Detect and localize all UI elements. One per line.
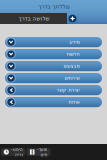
- button[interactable]: מבצעים: [5, 61, 102, 71]
- button[interactable]: אודות: [5, 97, 102, 107]
- staticText: יצירת קשר: [56, 87, 79, 93]
- staticText: אודות: [68, 99, 79, 105]
- button[interactable]: יצירת קשר: [5, 85, 102, 95]
- staticText: חדשות: [66, 51, 79, 57]
- staticText: מידע: [69, 39, 79, 45]
- button[interactable]: חדשות: [5, 49, 102, 59]
- staticText: היסטוריה: [10, 147, 22, 157]
- button[interactable]: מועדפים: [26, 148, 50, 156]
- staticText: מועדפים: [36, 147, 47, 157]
- staticText: מבצעים: [63, 63, 79, 69]
- button[interactable]: מידע: [5, 37, 102, 47]
- staticText: נגללתך בדרך: [38, 3, 69, 10]
- button[interactable]: היסטוריה: [1, 148, 25, 156]
- button[interactable]: Add: [67, 13, 78, 24]
- staticText: שלושה בדרך: [18, 15, 49, 22]
- staticText: שירותים: [64, 75, 79, 81]
- button[interactable]: שירותים: [5, 73, 102, 83]
